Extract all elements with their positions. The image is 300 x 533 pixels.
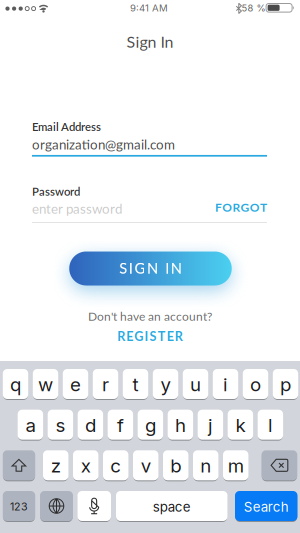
button[interactable]: n <box>193 450 218 480</box>
staticText: f <box>117 414 124 436</box>
staticText: space <box>153 499 191 515</box>
staticText: v <box>141 454 151 477</box>
button[interactable]: enter password <box>0 193 300 227</box>
button[interactable]: Numbers <box>3 491 35 521</box>
staticText: R <box>232 200 240 214</box>
button[interactable]: m <box>223 450 248 480</box>
staticText: u <box>190 373 201 396</box>
staticText: c <box>110 454 121 477</box>
staticText: I <box>165 259 169 277</box>
staticText: 123 <box>10 500 28 513</box>
button[interactable]: l <box>258 410 283 440</box>
button[interactable]: t <box>123 369 148 399</box>
staticText: w <box>38 373 53 396</box>
staticText: b <box>170 454 181 477</box>
staticText: p <box>280 373 291 396</box>
staticText: S <box>150 329 157 344</box>
staticText: R <box>117 329 125 344</box>
button[interactable]: organization@gmail.com <box>0 128 300 161</box>
staticText: Sign In <box>126 32 173 51</box>
staticText: I <box>144 329 148 344</box>
staticText: 58 % <box>241 2 265 14</box>
button[interactable]: z <box>43 450 68 480</box>
button[interactable]: space <box>116 491 227 521</box>
staticText: N <box>171 259 182 277</box>
button[interactable]: Next keyboard <box>40 491 73 521</box>
staticText: n <box>200 454 211 477</box>
button[interactable]: f <box>108 410 133 440</box>
button[interactable]: x <box>73 450 98 480</box>
button[interactable]: u <box>183 369 208 399</box>
staticText: E <box>126 329 133 344</box>
staticText: organization@gmail.com <box>32 136 175 152</box>
button[interactable]: h <box>168 410 193 440</box>
staticText: Don't have an account? <box>88 309 212 323</box>
button[interactable]: o <box>243 369 268 399</box>
staticText: 9:41 AM <box>130 2 168 14</box>
staticText: s <box>55 414 65 436</box>
button[interactable]: Search <box>235 491 297 521</box>
button[interactable]: v <box>133 450 158 480</box>
button[interactable]: Dictate <box>77 491 111 521</box>
button[interactable]: r <box>93 369 118 399</box>
button[interactable]: e <box>63 369 88 399</box>
button[interactable]: F <box>32 200 267 214</box>
staticText: T <box>158 329 166 344</box>
staticText: t <box>132 373 138 396</box>
staticText: o <box>250 373 261 396</box>
button[interactable]: a <box>18 410 43 440</box>
button[interactable]: w <box>33 369 58 399</box>
staticText: G <box>134 329 143 344</box>
staticText: G <box>241 200 250 214</box>
staticText: d <box>85 414 96 436</box>
staticText: F <box>215 200 222 214</box>
staticText: i <box>223 373 228 396</box>
staticText: z <box>51 454 61 477</box>
staticText: Email Address <box>32 120 101 133</box>
button[interactable]: j <box>198 410 223 440</box>
staticText: T <box>260 200 267 214</box>
staticText: S <box>119 259 127 277</box>
staticText: q <box>10 373 21 396</box>
button[interactable]: i <box>213 369 238 399</box>
staticText: enter password <box>32 201 122 217</box>
staticText: N <box>147 259 158 277</box>
staticText: h <box>175 414 186 436</box>
staticText: k <box>235 414 245 436</box>
staticText: Password <box>32 184 80 198</box>
staticText: Search <box>244 499 289 515</box>
staticText: r <box>102 373 109 396</box>
staticText: E <box>167 329 174 344</box>
button[interactable]: Shift <box>3 450 35 480</box>
button[interactable]: c <box>103 450 128 480</box>
button[interactable]: s <box>48 410 73 440</box>
staticText: R <box>175 329 183 344</box>
button[interactable]: g <box>138 410 163 440</box>
staticText: y <box>160 373 170 396</box>
button[interactable]: S <box>69 251 232 285</box>
staticText: j <box>208 414 213 436</box>
button[interactable]: q <box>3 369 28 399</box>
staticText: O <box>250 200 260 214</box>
button[interactable]: k <box>228 410 253 440</box>
staticText: I <box>129 259 133 277</box>
staticText: l <box>268 414 273 436</box>
button[interactable]: d <box>78 410 103 440</box>
button[interactable]: R <box>80 329 220 344</box>
staticText: G <box>134 259 145 277</box>
staticText: g <box>145 414 156 436</box>
button[interactable]: y <box>153 369 178 399</box>
staticText: a <box>25 414 35 436</box>
staticText: e <box>70 373 81 396</box>
staticText: m <box>228 454 244 477</box>
staticText: O <box>222 200 232 214</box>
staticText: x <box>81 454 91 477</box>
button[interactable]: Delete <box>261 450 297 480</box>
button[interactable]: p <box>273 369 298 399</box>
button[interactable]: b <box>163 450 188 480</box>
